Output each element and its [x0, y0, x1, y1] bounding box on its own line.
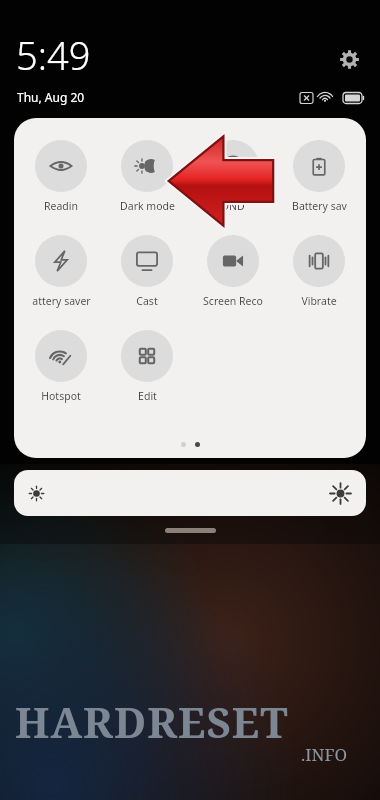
button[interactable]: Edit — [114, 330, 180, 403]
staticText: Cast — [136, 294, 158, 308]
staticText: Screen Reco — [203, 294, 263, 308]
staticText: Edit — [138, 389, 157, 403]
button[interactable]: Cast — [114, 235, 180, 308]
button[interactable]: Brightness slider — [14, 470, 366, 516]
staticText: Vibrate — [301, 294, 337, 308]
staticText: Thu, Aug 20 — [17, 89, 85, 105]
button[interactable]: Hotspot — [28, 330, 94, 403]
button[interactable]: Battery sav — [286, 140, 352, 213]
staticText: Dark mode — [120, 199, 175, 213]
button[interactable]: attery saver — [28, 235, 94, 308]
button[interactable]: Readin — [28, 140, 94, 213]
staticText: Readin — [44, 199, 78, 213]
button[interactable]: Screen Reco — [200, 235, 266, 308]
button[interactable]: Settings — [332, 42, 366, 76]
staticText: 5:49 — [16, 29, 91, 81]
staticText: DND — [221, 199, 245, 213]
staticText: attery saver — [32, 294, 91, 308]
staticText: Battery sav — [292, 199, 347, 213]
staticText: .INFO — [301, 743, 348, 766]
staticText: Hotspot — [41, 389, 81, 403]
staticText: HARDRESET — [15, 693, 289, 750]
button[interactable]: Vibrate — [286, 235, 352, 308]
button[interactable]: DND — [200, 140, 266, 213]
button[interactable]: Dark mode — [114, 140, 180, 213]
